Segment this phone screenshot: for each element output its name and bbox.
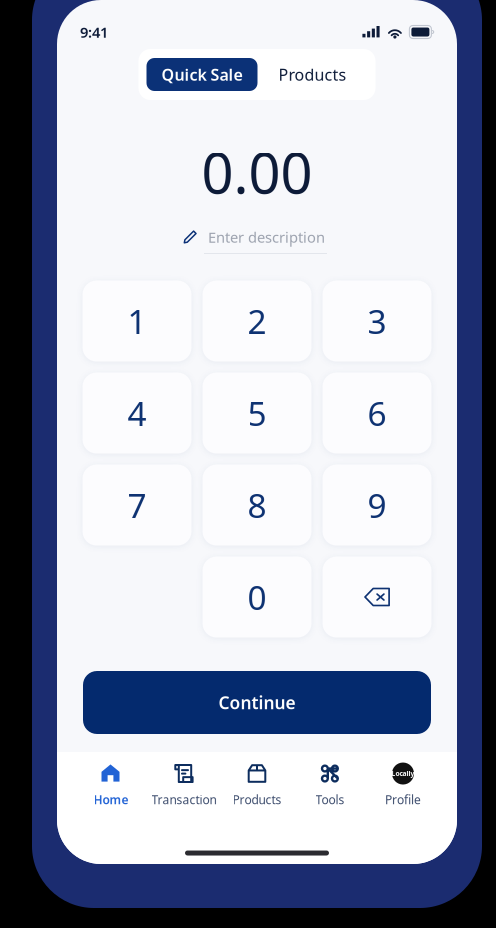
- staticText: Transaction: [151, 791, 216, 807]
- staticText: 4: [127, 391, 146, 435]
- button[interactable]: Transaction: [147, 764, 220, 806]
- button[interactable]: 6: [322, 372, 431, 453]
- button[interactable]: Tools: [293, 764, 366, 806]
- staticText: Home: [93, 791, 128, 807]
- button[interactable]: 5: [202, 372, 311, 453]
- staticText: 2: [247, 299, 266, 343]
- button[interactable]: Delete: [322, 556, 431, 637]
- button[interactable]: 2: [202, 280, 311, 361]
- button[interactable]: Products: [220, 764, 293, 806]
- staticText: 0: [247, 575, 266, 619]
- button[interactable]: 1: [82, 280, 191, 361]
- button[interactable]: 8: [202, 464, 311, 545]
- button[interactable]: Home: [74, 764, 147, 806]
- staticText: 3: [367, 299, 386, 343]
- staticText: Profile: [385, 791, 421, 807]
- button[interactable]: Products: [257, 58, 367, 91]
- staticText: Continue: [218, 691, 295, 714]
- button[interactable]: Quick Sale: [146, 58, 257, 91]
- staticText: 9:41: [80, 22, 108, 42]
- button[interactable]: 4: [82, 372, 191, 453]
- staticText: 7: [127, 483, 146, 527]
- staticText: 5: [247, 391, 266, 435]
- staticText: Quick Sale: [161, 64, 242, 85]
- staticText: 9: [367, 483, 386, 527]
- button[interactable]: 9: [322, 464, 431, 545]
- staticText: Tools: [315, 791, 344, 807]
- staticText: 0.00: [201, 135, 312, 209]
- staticText: Locally: [391, 769, 414, 778]
- button[interactable]: 0: [202, 556, 311, 637]
- staticText: Products: [232, 791, 281, 807]
- staticText: 1: [127, 299, 146, 343]
- staticText: Enter description: [208, 227, 325, 247]
- button[interactable]: Continue: [83, 671, 431, 734]
- staticText: 6: [367, 391, 386, 435]
- button[interactable]: Locally: [366, 764, 439, 806]
- button[interactable]: 7: [82, 464, 191, 545]
- button[interactable]: 3: [322, 280, 431, 361]
- staticText: 8: [247, 483, 266, 527]
- staticText: Products: [278, 64, 346, 85]
